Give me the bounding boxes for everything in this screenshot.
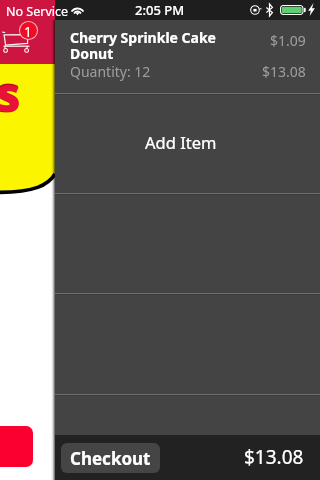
staticText: s [0,61,21,126]
staticText: Add Item [145,131,217,153]
staticText: $1.09 [270,31,306,50]
staticText: No Service [6,3,69,20]
staticText: 1 [24,22,33,39]
button[interactable]: Cherry Sprinkle Cake Donut [55,20,320,93]
button[interactable]: Menu item [0,426,33,467]
staticText: s [0,60,21,127]
staticText: $13.08 [244,444,304,470]
staticText: Checkout [70,447,151,470]
button[interactable]: Shopping cart [0,20,42,56]
staticText: Cherry Sprinkle Cake Donut [70,28,216,63]
button[interactable]: Checkout [61,443,160,473]
button[interactable]: Add Item [55,95,320,193]
staticText: $13.08 [262,62,306,81]
staticText: Quantity: 12 [70,62,151,81]
staticText: 2:05 PM [135,1,185,19]
